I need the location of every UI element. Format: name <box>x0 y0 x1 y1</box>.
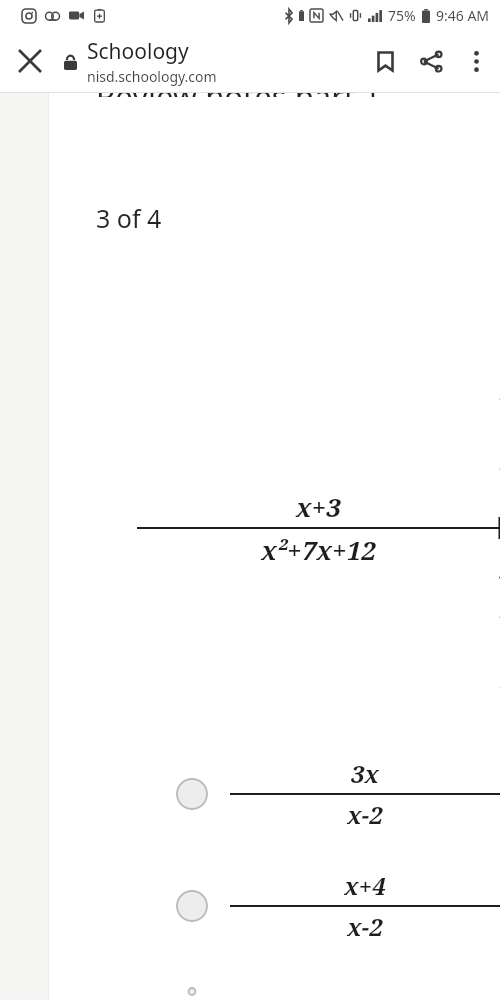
button[interactable]: 3x <box>49 983 500 1000</box>
staticText: 3x <box>351 757 379 790</box>
staticText: x−2 <box>347 798 383 831</box>
staticText: Review notes part 1 <box>96 93 381 97</box>
button[interactable]: Close <box>8 39 52 83</box>
staticText: x+4 <box>344 869 386 902</box>
button[interactable]: x+4 <box>49 865 500 947</box>
staticText: 75% <box>388 6 416 25</box>
staticText: nisd.schoology.com <box>87 67 217 86</box>
button[interactable]: 3x <box>49 753 500 835</box>
staticText: Schoology <box>87 37 189 66</box>
button[interactable]: Bookmark <box>362 38 408 84</box>
staticText: x+3 <box>296 489 341 524</box>
staticText: 3 of 4 <box>96 201 162 235</box>
button[interactable]: Share <box>408 38 454 84</box>
staticText: x−2 <box>347 910 383 943</box>
button[interactable]: More options <box>454 39 498 83</box>
staticText: x²+7x+12 <box>261 532 376 567</box>
staticText: 9:46 AM <box>436 6 490 25</box>
